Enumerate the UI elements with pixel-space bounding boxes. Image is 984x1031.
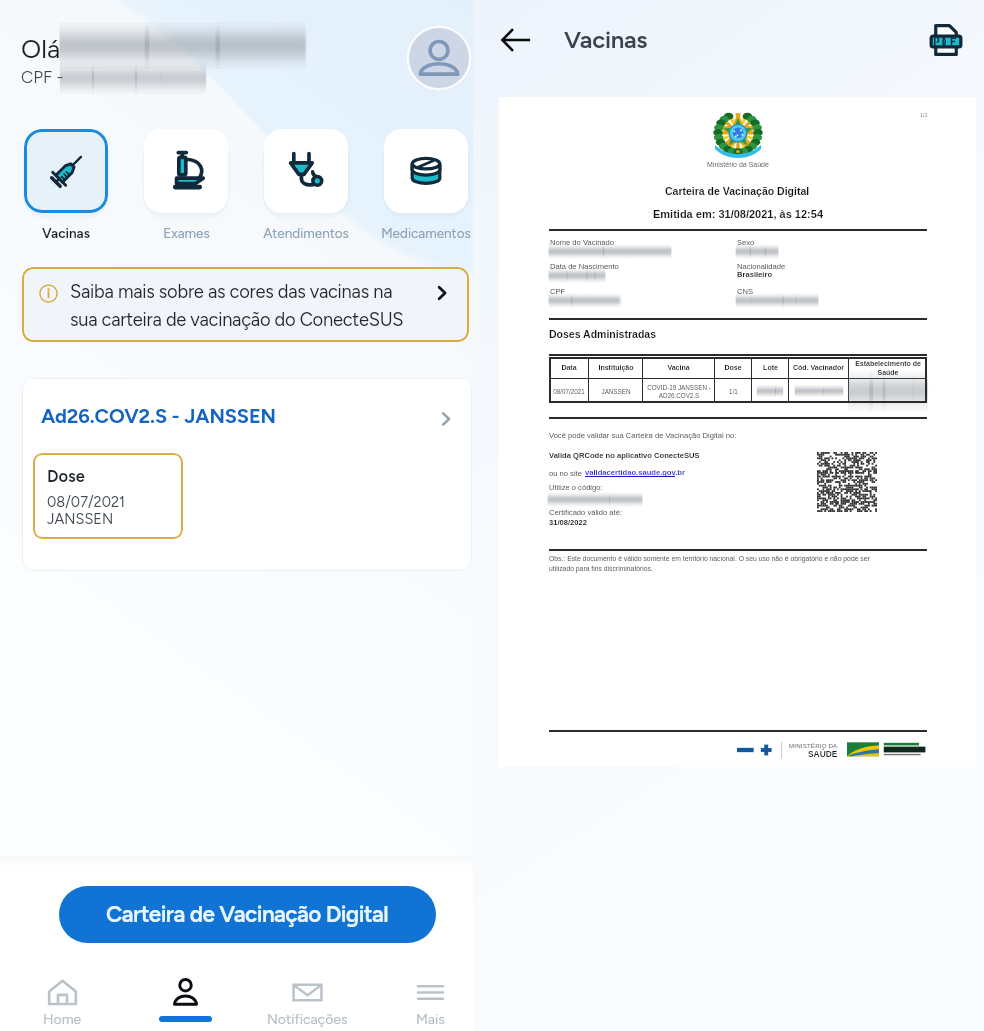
button[interactable]: [264, 129, 348, 213]
staticText: Obs.: Este documento é válido somente em…: [549, 555, 870, 573]
button[interactable]: Perfil: [126, 968, 244, 1031]
staticText: Certificado válido até:: [549, 508, 623, 516]
staticText: Valida QRCode no aplicativo ConecteSUS: [549, 451, 700, 459]
button[interactable]: Baixar PDF: [922, 16, 970, 64]
staticText: Saiba mais sobre as cores das vacinas na…: [70, 281, 427, 331]
button[interactable]: Saiba mais sobre as cores das vacinas na…: [22, 267, 469, 342]
button[interactable]: Voltar: [493, 17, 539, 63]
staticText: 1/1: [729, 388, 738, 395]
staticText: Ministério da Saúde: [707, 161, 769, 169]
button[interactable]: [24, 129, 108, 213]
staticText: SAÚDE: [808, 749, 838, 758]
staticText: Vacinas: [42, 225, 90, 241]
staticText: Estabelecimento de Saúde: [855, 360, 921, 376]
button[interactable]: [384, 129, 468, 213]
staticText: Exames: [163, 225, 210, 241]
staticText: Sexo: [737, 238, 755, 246]
staticText: CNS: [737, 287, 754, 295]
staticText: COVID-19 JANSSEN - AD26.COV2.S: [647, 384, 711, 399]
staticText: 08/07/2021: [47, 493, 126, 510]
staticText: Nome do Vacinado: [550, 238, 615, 246]
staticText: Você pode validar sua Carteira de Vacina…: [549, 431, 737, 439]
staticText: 31/08/2022: [549, 518, 588, 526]
staticText: Doses Administradas: [549, 328, 656, 340]
staticText: CPF: [550, 287, 566, 295]
staticText: Dose: [724, 364, 742, 372]
staticText: MINISTÉRIO DA: [789, 742, 838, 749]
staticText: Utilize o código:: [549, 483, 603, 491]
staticText: 1/1: [920, 112, 928, 118]
staticText: Vacinas: [564, 25, 648, 54]
staticText: JANSSEN: [47, 510, 114, 527]
button[interactable]: Perfil: [406, 25, 472, 91]
staticText: validacertidao.saude.gov.br: [585, 468, 685, 476]
staticText: Carteira de Vacinação Digital: [665, 185, 810, 197]
staticText: Lote: [763, 364, 778, 372]
button[interactable]: Ad26.COV2.S - JANSSEN: [22, 378, 472, 571]
staticText: Mais: [416, 1011, 445, 1028]
staticText: ou no site: [549, 469, 585, 477]
staticText: JANSSEN: [601, 388, 631, 395]
staticText: Home: [43, 1011, 82, 1028]
button[interactable]: Notificações: [248, 968, 366, 1031]
button[interactable]: Mais: [371, 968, 489, 1031]
staticText: CPF -: [21, 67, 64, 87]
staticText: Ad26.COV2.S - JANSSEN: [41, 404, 276, 428]
staticText: Notificações: [267, 1011, 348, 1028]
staticText: Medicamentos: [381, 225, 471, 241]
staticText: Data: [561, 364, 577, 372]
staticText: Cód. Vacinador: [793, 364, 844, 372]
staticText: 08/07/2021: [553, 388, 585, 395]
staticText: Emitida em: 31/08/2021, às 12:54: [653, 208, 823, 220]
staticText: Olá: [21, 33, 61, 64]
button[interactable]: Home: [3, 968, 121, 1031]
staticText: Atendimentos: [263, 225, 349, 241]
button[interactable]: Carteira de Vacinação Digital: [59, 886, 436, 943]
staticText: Instituição: [598, 364, 634, 372]
staticText: Nacionalidade: [737, 262, 786, 270]
staticText: Vacina: [667, 364, 690, 372]
staticText: Carteira de Vacinação Digital: [106, 901, 389, 928]
staticText: Data de Nascimento: [550, 262, 619, 270]
button[interactable]: [144, 129, 228, 213]
staticText: Dose: [47, 466, 85, 486]
staticText: Brasileiro: [737, 270, 773, 278]
